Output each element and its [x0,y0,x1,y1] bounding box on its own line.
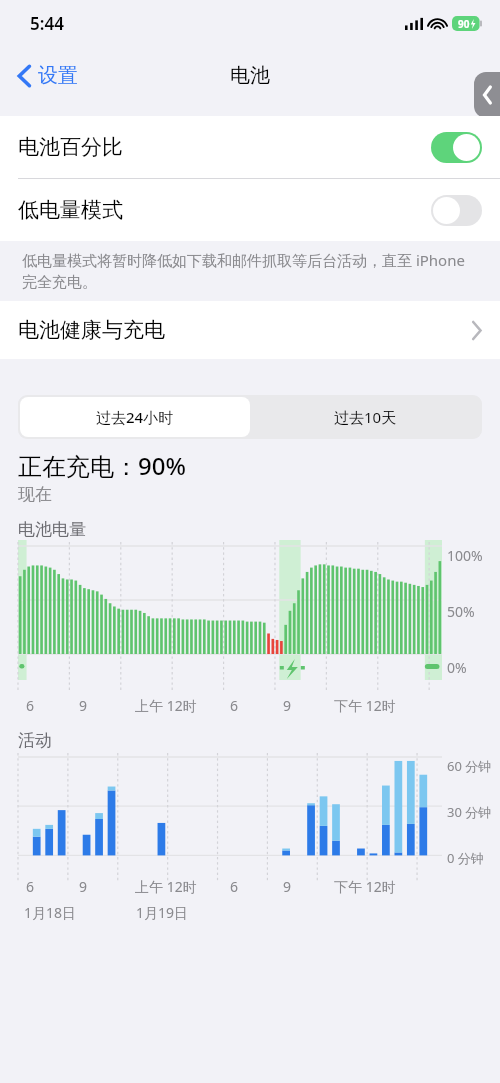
staticText: 30 分钟 [447,803,492,821]
staticText: 活动 [18,730,52,751]
button[interactable]: 设置 [14,59,82,92]
button[interactable]: Off [431,195,482,226]
staticText: 6 [26,877,35,896]
staticText: 电池健康与充电 [18,317,472,343]
button[interactable]: 电池健康与充电 [0,301,500,359]
staticText: 电池 [230,63,270,88]
staticText: 设置 [38,63,78,88]
staticText: 下午 12时 [334,696,396,715]
staticText: 上午 12时 [135,696,197,715]
button[interactable]: On [431,132,482,163]
staticText: 9 [79,877,88,896]
staticText: 正在充电：90% [18,449,186,482]
button[interactable]: 低电量模式 [0,179,500,241]
staticText: 6 [230,877,239,896]
staticText: 100% [447,546,483,565]
staticText: 上午 12时 [135,877,197,896]
button[interactable]: 过去24小时 [20,397,250,437]
staticText: 电池电量 [18,519,86,540]
staticText: 0 分钟 [447,849,484,867]
staticText: 过去24小时 [96,407,174,427]
staticText: 50% [447,602,475,621]
staticText: 6 [230,696,239,715]
staticText: 0% [447,658,467,677]
staticText: 电池百分比 [18,134,431,160]
staticText: 9 [79,696,88,715]
staticText: 现在 [18,484,52,505]
staticText: 1月19日 [136,903,189,922]
staticText: 下午 12时 [334,877,396,896]
button[interactable]: Back drawer [474,72,500,118]
staticText: 60 分钟 [447,757,492,775]
staticText: 6 [26,696,35,715]
staticText: 1月18日 [24,903,77,922]
button[interactable]: 电池百分比 [0,116,500,178]
staticText: 过去10天 [334,407,397,427]
staticText: 5:44 [30,12,64,35]
button[interactable]: 过去10天 [250,397,480,437]
staticText: 低电量模式将暂时降低如下载和邮件抓取等后台活动，直至 iPhone 完全充电。 [22,250,478,291]
staticText: 90 [458,17,470,31]
staticText: 低电量模式 [18,197,431,223]
staticText: 9 [283,877,292,896]
staticText: 9 [283,696,292,715]
